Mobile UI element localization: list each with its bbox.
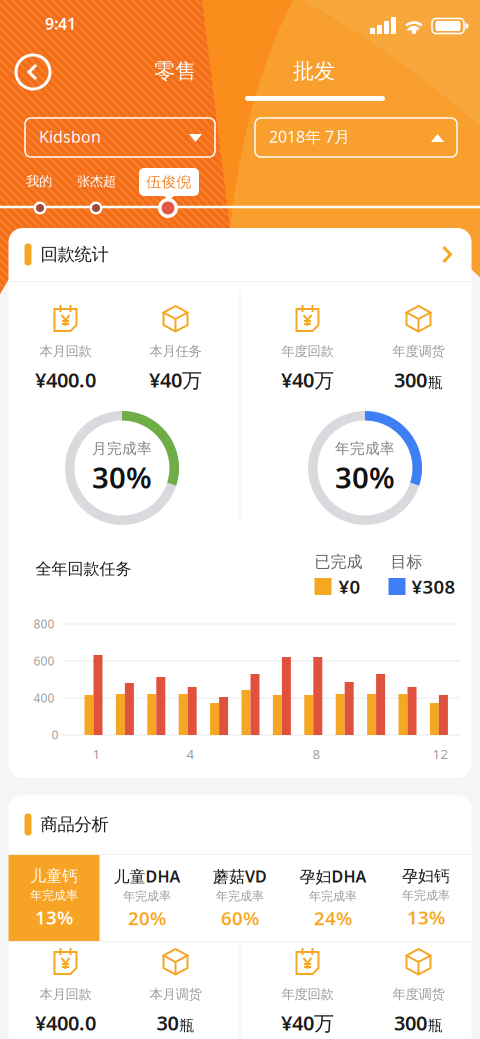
staticText: 400 <box>33 690 54 706</box>
staticText: 孕妇DHA <box>299 866 366 887</box>
staticText: 已完成 <box>314 552 362 572</box>
staticText: 月完成率 <box>92 439 152 457</box>
button[interactable]: 孕妇DHA <box>287 855 378 941</box>
staticText: 年度调货 <box>392 986 444 1002</box>
button[interactable]: Kidsbon <box>25 118 215 157</box>
staticText: 20% <box>128 906 166 930</box>
staticText: 年完成率 <box>123 889 171 904</box>
staticText: ¥400.0 <box>35 1009 96 1036</box>
staticText: 年度回款 <box>281 343 333 359</box>
button[interactable]: 儿童钙 <box>8 855 99 941</box>
staticText: 年完成率 <box>309 889 357 904</box>
button[interactable]: 儿童DHA <box>101 855 192 941</box>
staticText: 零售 <box>154 58 196 84</box>
staticText: 蘑菇VD <box>213 866 267 887</box>
staticText: 600 <box>33 653 54 669</box>
staticText: 8 <box>312 745 320 763</box>
staticText: 孕妇钙 <box>402 866 450 886</box>
staticText: 年完成率 <box>30 888 78 903</box>
staticText: 商品分析 <box>40 814 108 835</box>
staticText: 瓶 <box>428 373 443 391</box>
staticText: 1 <box>92 745 100 763</box>
button[interactable]: 我的 <box>26 173 52 189</box>
staticText: 年度调货 <box>392 343 444 359</box>
staticText: 目标 <box>390 552 422 572</box>
staticText: 300 <box>394 366 427 393</box>
staticText: 30 <box>156 1009 178 1036</box>
staticText: 300 <box>394 1009 427 1036</box>
staticText: ¥40万 <box>281 1009 334 1036</box>
staticText: 年完成率 <box>335 439 395 457</box>
staticText: ¥0 <box>338 574 360 599</box>
staticText: 12 <box>432 745 448 763</box>
staticText: 800 <box>33 616 54 632</box>
staticText: ¥308 <box>411 574 455 599</box>
staticText: 年度回款 <box>281 986 333 1002</box>
staticText: 全年回款任务 <box>35 559 131 579</box>
button[interactable]: 孕妇钙 <box>380 855 471 941</box>
staticText: 9:41 <box>45 13 76 34</box>
button[interactable]: 零售 <box>154 58 196 84</box>
staticText: Kidsbon <box>39 126 101 147</box>
staticText: 年完成率 <box>402 888 450 903</box>
staticText: 年完成率 <box>216 889 264 904</box>
staticText: 本月回款 <box>39 343 91 359</box>
staticText: 瓶 <box>179 1016 194 1034</box>
staticText: 13% <box>35 905 73 930</box>
staticText: 本月回款 <box>39 986 91 1002</box>
staticText: 30% <box>335 457 395 496</box>
staticText: ¥40万 <box>149 366 202 393</box>
button[interactable]: 伍俊倪 <box>139 168 199 196</box>
staticText: 儿童DHA <box>113 866 180 887</box>
staticText: 张杰超 <box>77 173 116 189</box>
staticText: 4 <box>186 745 194 763</box>
staticText: 儿童钙 <box>30 866 78 886</box>
staticText: 2018年 7月 <box>269 126 350 147</box>
button[interactable]: Back <box>16 55 50 89</box>
staticText: 13% <box>407 905 445 930</box>
button[interactable]: 批发 <box>293 58 335 84</box>
staticText: 本月任务 <box>149 343 201 359</box>
button[interactable]: 蘑菇VD <box>194 855 285 941</box>
staticText: 60% <box>221 906 259 930</box>
staticText: 我的 <box>26 173 52 189</box>
staticText: 回款统计 <box>40 244 108 265</box>
staticText: 瓶 <box>428 1016 443 1034</box>
staticText: 伍俊倪 <box>146 173 191 191</box>
staticText: 批发 <box>293 58 335 84</box>
staticText: 本月调货 <box>149 986 201 1002</box>
staticText: 0 <box>51 727 58 743</box>
staticText: 24% <box>314 906 352 930</box>
button[interactable]: 张杰超 <box>77 173 116 189</box>
button[interactable]: 2018年 7月 <box>255 118 457 157</box>
staticText: ¥40万 <box>281 366 334 393</box>
staticText: 30% <box>92 457 152 496</box>
staticText: ¥400.0 <box>35 366 96 393</box>
button[interactable]: 回款统计 <box>8 228 471 281</box>
